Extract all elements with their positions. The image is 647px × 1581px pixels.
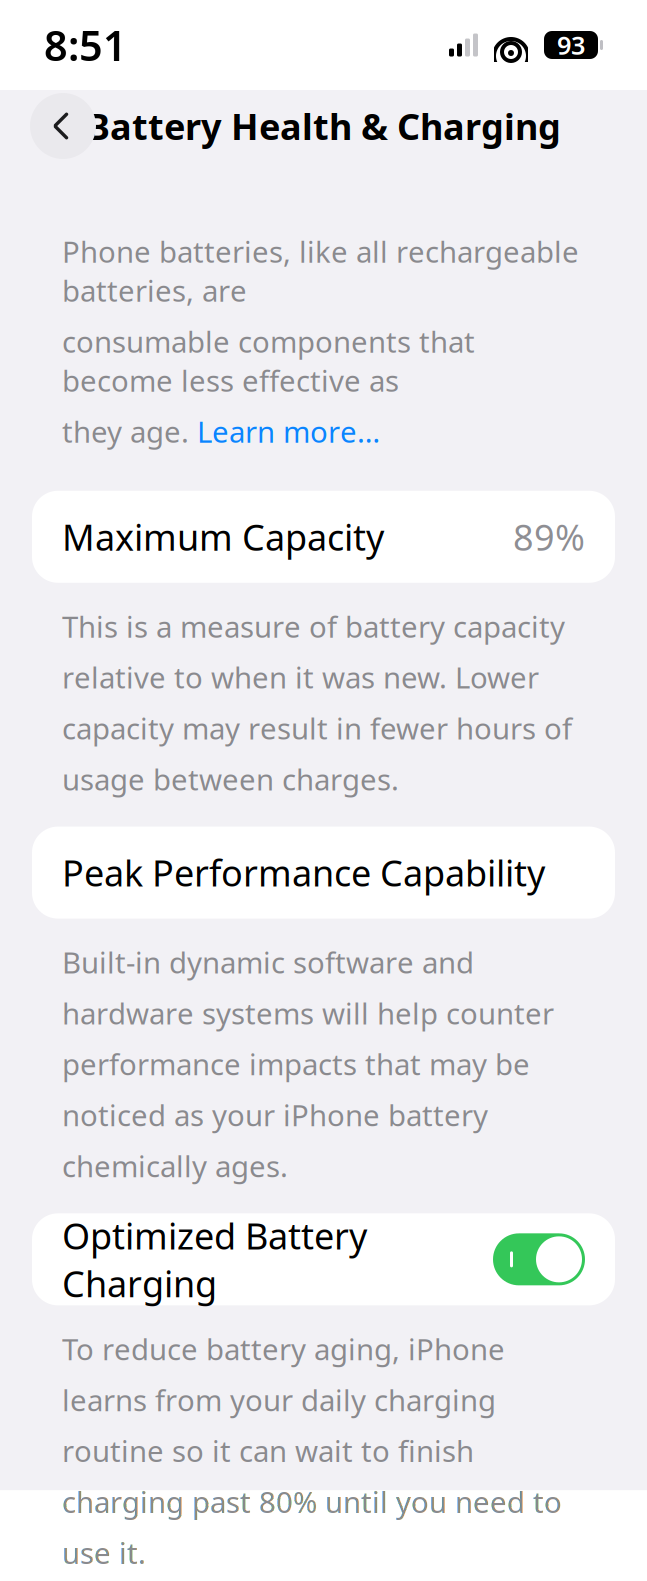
staticText: Built-in dynamic software and hardware s… bbox=[62, 943, 554, 1185]
staticText: they age. bbox=[62, 412, 197, 451]
staticText: consumable components that become less e… bbox=[62, 322, 475, 400]
staticText: 93 bbox=[557, 28, 585, 62]
button[interactable]: Back bbox=[30, 93, 96, 159]
staticText: Battery Health & Charging bbox=[86, 102, 561, 150]
button[interactable]: Optimized Battery Charging bbox=[32, 1213, 615, 1305]
button[interactable]: Learn more… bbox=[197, 412, 380, 451]
button[interactable]: Peak Performance Capability bbox=[32, 827, 615, 919]
staticText: To reduce battery aging, iPhone learns f… bbox=[62, 1329, 562, 1572]
staticText: Phone batteries, like all rechargeable b… bbox=[62, 232, 579, 310]
staticText: Optimized Battery Charging bbox=[62, 1212, 367, 1307]
staticText: 89% bbox=[513, 513, 585, 561]
staticText: This is a measure of battery capacity re… bbox=[62, 607, 572, 799]
staticText: Peak Performance Capability bbox=[62, 849, 545, 896]
staticText: Learn more… bbox=[197, 412, 380, 451]
button[interactable]: Maximum Capacity bbox=[32, 491, 615, 583]
staticText: Maximum Capacity bbox=[62, 513, 384, 561]
